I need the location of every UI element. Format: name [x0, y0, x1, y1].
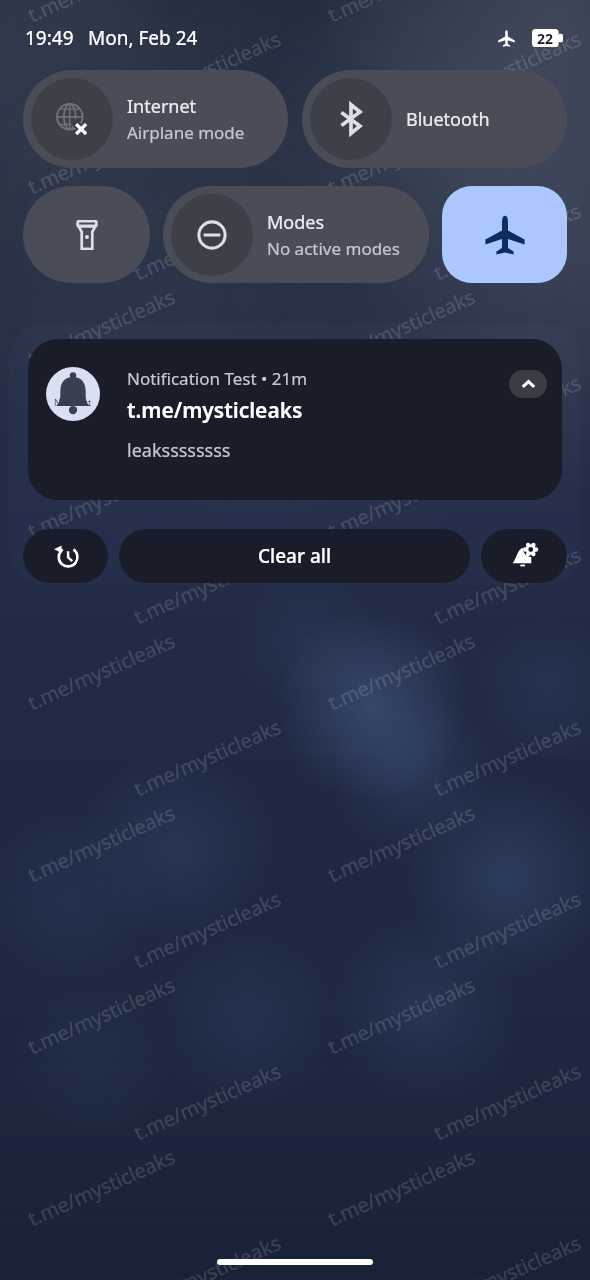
staticText: t.me/mysticleaks — [429, 713, 586, 802]
staticText: t.me/mysticleaks — [23, 971, 180, 1060]
staticText: t.me/mysticleaks — [129, 713, 286, 802]
staticText: 22 — [537, 29, 554, 47]
staticText: t.me/mysticleaks — [323, 111, 480, 200]
staticText: t.me/mysticleaks — [323, 283, 480, 372]
staticText: t.me/mysticleaks — [127, 396, 303, 425]
staticText: t.me/mysticleaks — [429, 885, 586, 974]
staticText: t.me/mysticleaks — [23, 799, 180, 888]
staticText: t.me/mysticleaks — [129, 25, 286, 114]
button[interactable]: Notification settings — [481, 529, 567, 583]
button[interactable]: Internet — [23, 70, 288, 168]
staticText: t.me/mysticleaks — [129, 369, 286, 458]
staticText: t.me/mysticleaks — [429, 369, 586, 458]
staticText: t.me/mysticleaks — [429, 1229, 586, 1280]
staticText: Noti Test — [54, 396, 92, 408]
staticText: t.me/mysticleaks — [323, 0, 480, 28]
staticText: t.me/mysticleaks — [129, 1229, 286, 1280]
staticText: t.me/mysticleaks — [323, 1143, 480, 1232]
staticText: leakssssssss — [127, 438, 231, 463]
staticText: Airplane mode — [127, 121, 245, 144]
staticText: Clear all — [258, 543, 332, 569]
staticText: t.me/mysticleaks — [129, 1057, 286, 1146]
button[interactable]: Airplane mode — [442, 186, 567, 283]
staticText: t.me/mysticleaks — [323, 971, 480, 1060]
staticText: Modes — [267, 210, 325, 235]
staticText: t.me/mysticleaks — [429, 197, 586, 286]
button[interactable]: Bluetooth — [302, 70, 567, 168]
staticText: Internet — [127, 94, 197, 119]
button[interactable]: History — [23, 529, 108, 583]
staticText: No active modes — [267, 237, 400, 260]
staticText: t.me/mysticleaks — [23, 627, 180, 716]
staticText: t.me/mysticleaks — [23, 0, 180, 28]
staticText: t.me/mysticleaks — [23, 1143, 180, 1232]
staticText: t.me/mysticleaks — [429, 541, 586, 630]
staticText: t.me/mysticleaks — [23, 111, 180, 200]
staticText: t.me/mysticleaks — [129, 885, 286, 974]
staticText: t.me/mysticleaks — [129, 197, 286, 286]
button[interactable]: Clear all — [119, 529, 470, 583]
button[interactable]: Collapse — [509, 370, 547, 398]
button[interactable]: Noti Test — [28, 339, 562, 500]
staticText: t.me/mysticleaks — [323, 799, 480, 888]
staticText: t.me/mysticleaks — [429, 1057, 586, 1146]
staticText: t.me/mysticleaks — [23, 283, 180, 372]
staticText: t.me/mysticleaks — [429, 25, 586, 114]
staticText: t.me/mysticleaks — [23, 455, 180, 544]
staticText: t.me/mysticleaks — [323, 627, 480, 716]
staticText: Bluetooth — [406, 107, 490, 132]
staticText: Notification Test • 21m — [127, 367, 308, 390]
staticText: t.me/mysticleaks — [129, 541, 286, 630]
button[interactable]: Modes — [163, 186, 429, 283]
staticText: t.me/mysticleaks — [323, 455, 480, 544]
staticText: Mon, Feb 24 — [88, 25, 198, 51]
staticText: 19:49 — [25, 25, 74, 51]
button[interactable]: Flashlight — [23, 186, 150, 283]
